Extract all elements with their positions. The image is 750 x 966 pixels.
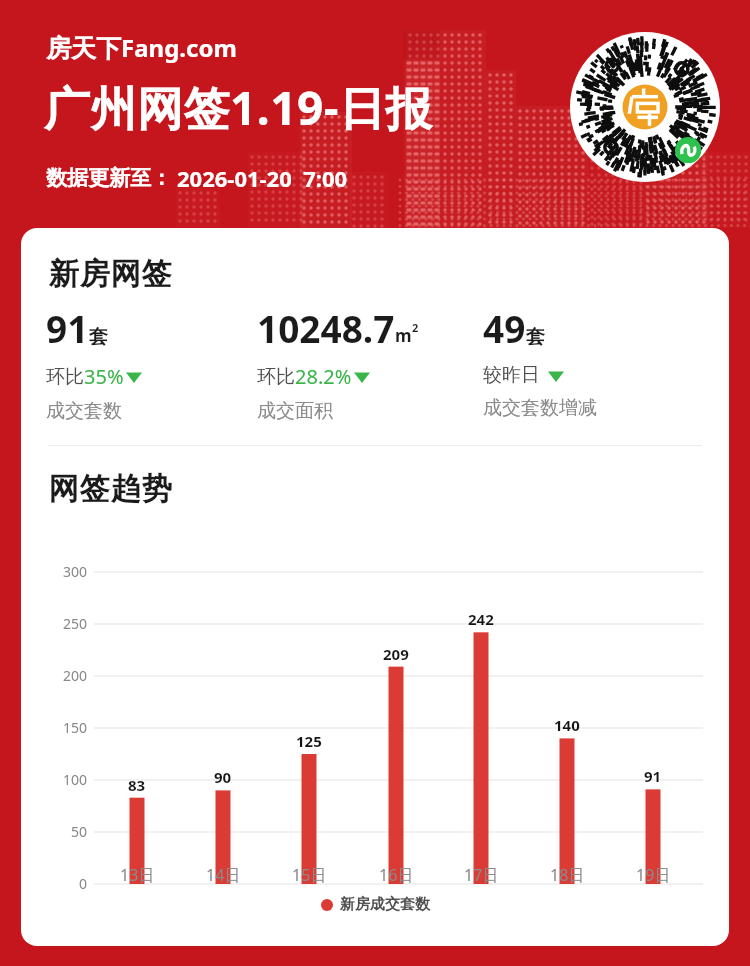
- button[interactable]: 49: [483, 303, 597, 420]
- staticText: 0: [79, 874, 88, 893]
- staticText: 50: [71, 822, 88, 841]
- staticText: 18日: [550, 864, 585, 886]
- staticText: 19日: [636, 864, 671, 886]
- staticText: 15日: [292, 864, 327, 886]
- staticText: 网签趋势: [48, 470, 172, 508]
- staticText: 套: [526, 325, 545, 349]
- staticText: 242: [468, 609, 494, 629]
- button[interactable]: 新房成交套数: [321, 895, 430, 914]
- staticText: 14日: [206, 864, 241, 886]
- staticText: 16日: [379, 864, 414, 886]
- staticText: 125: [296, 731, 322, 751]
- staticText: 2026-01-20 7:00: [177, 163, 348, 193]
- staticText: 150: [63, 718, 88, 737]
- staticText: 环比: [46, 365, 84, 389]
- button[interactable]: 91: [46, 303, 142, 423]
- staticText: 房天下: [46, 33, 121, 64]
- staticText: 13日: [120, 864, 155, 886]
- staticText: 新房网签: [48, 255, 172, 293]
- staticText: 200: [63, 666, 88, 685]
- staticText: 83: [128, 775, 146, 795]
- staticText: 2: [412, 320, 419, 335]
- staticText: Fang.com: [121, 31, 237, 64]
- staticText: 91: [46, 303, 89, 353]
- staticText: 250: [63, 614, 88, 633]
- staticText: 49: [483, 303, 526, 353]
- staticText: 209: [383, 644, 409, 664]
- staticText: 17日: [464, 864, 499, 886]
- staticText: 环比: [257, 365, 295, 389]
- staticText: 套: [89, 325, 108, 349]
- staticText: 成交套数增减: [483, 396, 597, 420]
- staticText: 90: [214, 767, 232, 787]
- staticText: 成交面积: [257, 399, 333, 423]
- staticText: m: [395, 324, 412, 347]
- button[interactable]: 扫描二维码: [570, 32, 720, 182]
- staticText: 35%: [84, 363, 124, 390]
- button[interactable]: 10248.7: [257, 303, 419, 423]
- staticText: 广州网签1.19-日报: [44, 76, 433, 139]
- staticText: 新房成交套数: [340, 895, 430, 914]
- staticText: 300: [63, 562, 88, 581]
- staticText: 140: [554, 715, 580, 735]
- button[interactable]: 房天下 Fang.com: [46, 31, 237, 64]
- staticText: 成交套数: [46, 399, 122, 423]
- staticText: 100: [63, 770, 88, 789]
- staticText: 数据更新至：: [46, 165, 172, 191]
- staticText: 较昨日: [483, 363, 540, 387]
- staticText: 91: [644, 766, 662, 786]
- staticText: 10248.7: [257, 303, 395, 353]
- staticText: 28.2%: [295, 363, 352, 390]
